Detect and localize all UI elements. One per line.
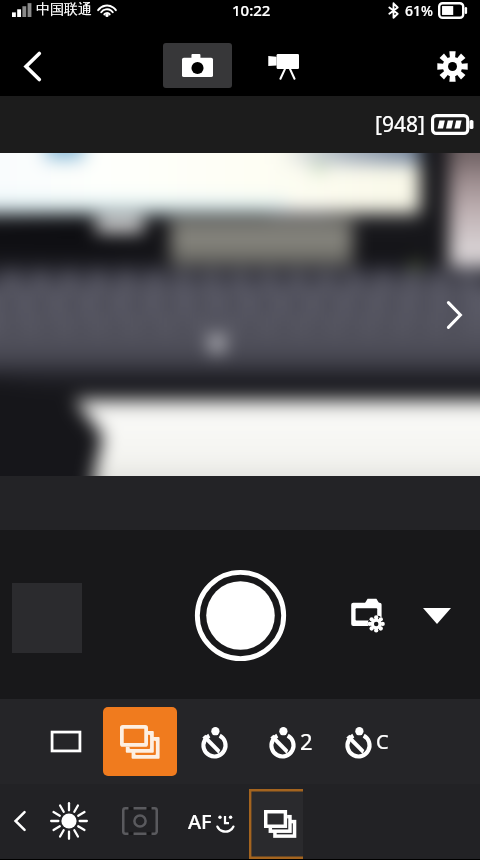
button[interactable]: Self timer custom	[332, 713, 398, 769]
button[interactable]: Metering mode	[112, 797, 168, 845]
button[interactable]: Self timer	[186, 713, 242, 769]
button[interactable]: Shutter	[196, 571, 285, 660]
button[interactable]: Single shot	[38, 713, 94, 769]
button[interactable]: Burst mode	[103, 707, 177, 776]
staticText: C	[376, 728, 389, 755]
button[interactable]: Drive mode	[249, 789, 303, 859]
button[interactable]: Video mode	[252, 43, 314, 88]
staticText: AF	[188, 808, 212, 835]
button[interactable]: Brightness	[43, 797, 95, 845]
button[interactable]: Previous	[0, 796, 40, 846]
button[interactable]: Camera settings	[342, 588, 398, 644]
staticText: 中国联通	[36, 1, 92, 19]
button[interactable]: Back	[8, 42, 56, 90]
button[interactable]: Auto focus	[180, 797, 242, 845]
staticText: 2	[300, 726, 313, 756]
button[interactable]: Self timer 2 seconds	[256, 713, 322, 769]
button[interactable]: Settings	[428, 42, 476, 90]
staticText: 61%	[405, 1, 433, 20]
staticText: [948]	[375, 110, 425, 139]
button[interactable]: Photo mode	[163, 43, 232, 88]
staticText: 10:22	[232, 0, 271, 20]
button[interactable]: Expand	[412, 591, 462, 641]
button[interactable]: Next	[432, 293, 476, 337]
